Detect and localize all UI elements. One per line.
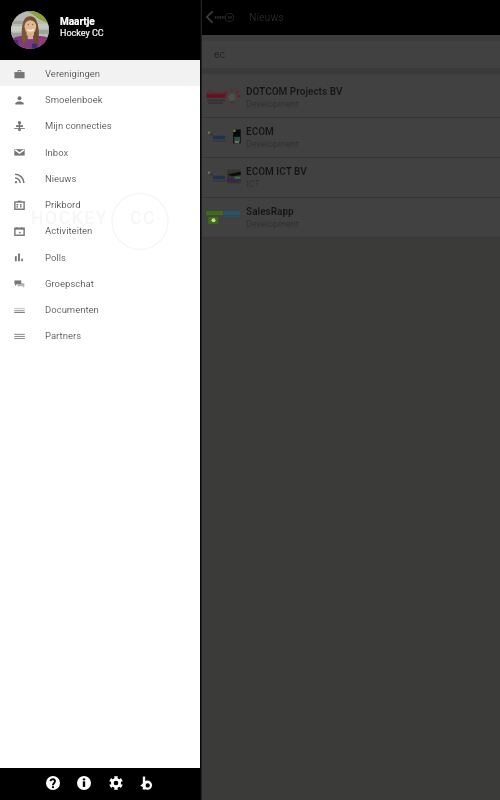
staticText: Polls [45, 252, 66, 263]
button[interactable]: Verenigingen [0, 60, 200, 86]
staticText: Smoelenboek [45, 94, 103, 105]
button[interactable]: ECOM [0, 118, 500, 158]
button[interactable]: Back [198, 6, 220, 28]
staticText: Development [246, 139, 299, 150]
staticText: Documenten [45, 304, 99, 315]
staticText: ECOM [246, 126, 274, 138]
button[interactable]: Prikbord [0, 190, 200, 216]
staticText: Development [246, 99, 299, 110]
button[interactable]: Information [74, 773, 94, 793]
staticText: ICT [246, 179, 260, 190]
button[interactable]: Nieuws [0, 164, 200, 190]
button[interactable]: ECOM ICT BV [0, 158, 500, 198]
staticText: Inbox [45, 147, 69, 158]
staticText: Mijn connecties [45, 120, 112, 131]
staticText: SalesRapp [246, 206, 294, 218]
staticText: Groepschat [45, 278, 94, 289]
staticText: Development [246, 219, 299, 230]
staticText: Hockey CC [60, 28, 104, 39]
button[interactable]: Partners [0, 320, 200, 346]
staticText: Partners [45, 330, 82, 341]
staticText: Nieuws [45, 173, 77, 184]
button[interactable]: Polls [0, 242, 200, 268]
button[interactable]: Inbox [0, 138, 200, 164]
staticText: ECOM ICT BV [246, 166, 307, 178]
button[interactable]: Settings [106, 773, 126, 793]
staticText: Prikbord [45, 199, 81, 210]
staticText: ec [214, 48, 226, 60]
button[interactable]: SalesRapp [0, 198, 500, 238]
button[interactable]: Documenten [0, 294, 200, 320]
button[interactable]: Help [43, 773, 63, 793]
button[interactable]: Brand [137, 773, 157, 793]
staticText: Maartje [60, 16, 95, 28]
staticText: Nieuws [249, 11, 284, 23]
button[interactable]: Smoelenboek [0, 86, 200, 112]
staticText: Verenigingen [45, 68, 101, 79]
staticText: HOCKEY [31, 208, 108, 229]
staticText: DOTCOM Projects BV [246, 86, 343, 98]
button[interactable]: DOTCOM Projects BV [0, 74, 500, 118]
button[interactable]: Activiteiten [0, 216, 200, 242]
button[interactable]: Groepschat [0, 268, 200, 294]
button[interactable]: Mijn connecties [0, 112, 200, 138]
staticText: CC [130, 208, 156, 229]
staticText: Activiteiten [45, 225, 93, 236]
